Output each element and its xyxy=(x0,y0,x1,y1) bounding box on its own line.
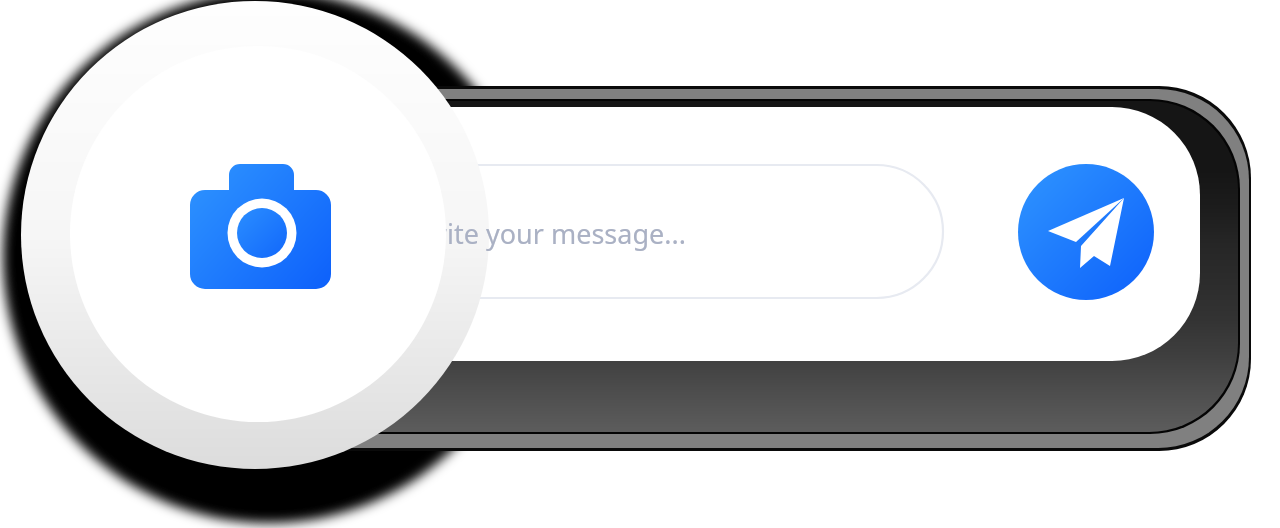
button[interactable] xyxy=(300,165,943,298)
button[interactable]: Open camera xyxy=(67,46,443,422)
button[interactable]: Send message xyxy=(1018,164,1154,300)
